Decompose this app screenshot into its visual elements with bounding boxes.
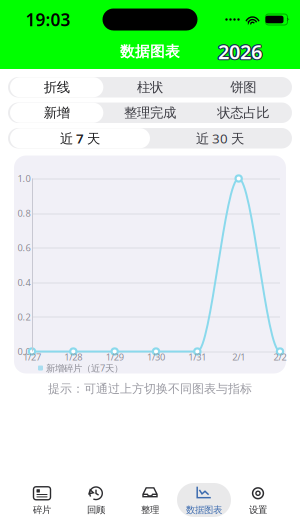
staticText: 2/1: [232, 351, 245, 363]
staticText: 回顾: [87, 504, 105, 516]
button[interactable]: 整理完成: [103, 103, 197, 123]
staticText: 折线: [44, 79, 70, 95]
staticText: 设置: [249, 504, 267, 516]
button[interactable]: 柱状: [103, 77, 197, 97]
staticText: 1.0: [17, 172, 30, 185]
staticText: 2026: [219, 38, 263, 65]
staticText: 19:03: [25, 8, 70, 31]
button[interactable]: 设置: [231, 483, 285, 517]
staticText: 2026: [219, 37, 263, 64]
staticText: 近 30 天: [196, 129, 244, 147]
staticText: 2026: [217, 37, 261, 64]
staticText: 整理: [141, 504, 159, 516]
staticText: 2026: [217, 38, 261, 65]
button[interactable]: 近 7 天: [10, 128, 150, 148]
staticText: 新增碎片（近7天）: [46, 362, 123, 374]
staticText: 整理完成: [124, 105, 176, 121]
staticText: 2026: [218, 38, 262, 65]
staticText: 2026: [218, 37, 262, 64]
button[interactable]: 近 30 天: [150, 128, 290, 148]
staticText: 0.4: [17, 276, 30, 288]
button[interactable]: 整理: [123, 483, 177, 517]
staticText: 0.0: [17, 345, 30, 358]
staticText: 状态占比: [217, 105, 269, 121]
staticText: 0.8: [17, 207, 30, 219]
staticText: 0.6: [17, 241, 30, 254]
staticText: 0.2: [17, 311, 30, 323]
staticText: 2026: [217, 39, 261, 66]
staticText: 1/30: [147, 351, 165, 363]
staticText: 数据图表: [186, 504, 222, 516]
staticText: 1/31: [188, 351, 206, 363]
button[interactable]: 数据图表: [177, 483, 231, 517]
button[interactable]: 新增: [10, 103, 103, 123]
staticText: 新增: [44, 105, 70, 121]
button[interactable]: 碎片: [15, 483, 69, 517]
button[interactable]: 折线: [10, 77, 103, 97]
button[interactable]: 饼图: [197, 77, 290, 97]
button[interactable]: 2026: [215, 37, 265, 66]
staticText: 饼图: [230, 79, 256, 95]
button[interactable]: 回顾: [69, 483, 123, 517]
staticText: 柱状: [137, 79, 163, 95]
button[interactable]: 状态占比: [197, 103, 290, 123]
staticText: 近 7 天: [60, 129, 100, 147]
staticText: 数据图表: [120, 42, 180, 60]
staticText: 1/28: [64, 351, 82, 363]
staticText: 2026: [219, 39, 263, 66]
staticText: 2/2: [273, 351, 286, 363]
staticText: 2026: [218, 39, 262, 66]
staticText: 1/29: [106, 351, 124, 363]
staticText: 碎片: [33, 504, 51, 516]
staticText: 1/27: [23, 351, 41, 363]
staticText: 提示：可通过上方切换不同图表与指标: [48, 381, 252, 396]
